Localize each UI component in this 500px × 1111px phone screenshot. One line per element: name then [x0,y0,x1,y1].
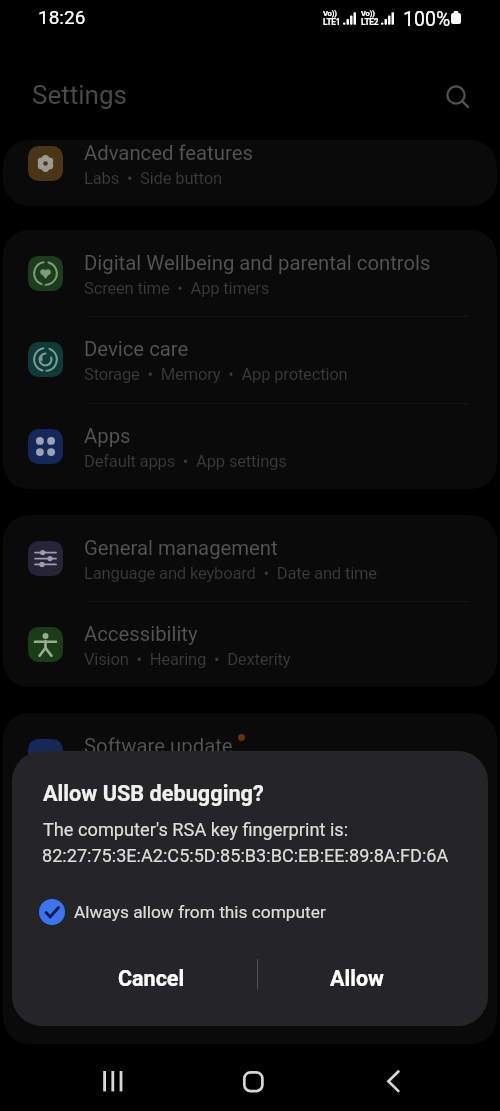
staticText: The computer's RSA key fingerprint is: [43,819,349,840]
staticText: Labs • Side button [84,169,222,188]
button[interactable]: Always allow from this computer [39,891,326,933]
staticText: Device care [84,337,189,361]
staticText: 82:27:75:3E:A2:C5:5D:85:B3:BC:EB:EE:89:8… [42,845,449,866]
staticText: Always allow from this computer [74,902,326,922]
button[interactable]: Recent apps [68,1063,158,1099]
staticText: General management [84,536,278,560]
staticText: Settings [32,80,127,110]
staticText: Screen time • App timers [84,279,270,298]
button[interactable]: Tips and user manual [3,799,497,885]
staticText: Advanced features [84,141,253,165]
staticText: Storage • Memory • App protection [84,365,348,384]
button[interactable]: Digital Wellbeing and parental controls [3,230,497,316]
staticText: 100% [403,8,451,31]
staticText: Accounts and backup [84,906,280,930]
staticText: Digital Wellbeing and parental controls [84,251,431,275]
button[interactable]: Search [437,76,475,114]
button[interactable]: Advanced features [3,140,497,186]
button[interactable]: Device care [3,316,497,402]
staticText: Vo)) [361,9,375,18]
staticText: Allow [330,966,384,991]
button[interactable]: Home [208,1063,298,1099]
staticText: Default apps • App settings [84,452,287,471]
staticText: Software update [84,734,233,758]
staticText: LTE1 [323,17,341,27]
staticText: Language and keyboard • Date and time [84,564,377,583]
staticText: Apps [84,424,131,448]
button[interactable]: Cancel [37,948,266,1008]
button[interactable]: Allow [257,948,456,1008]
button[interactable]: About phone [3,958,497,1044]
button[interactable]: Software update [3,713,497,799]
staticText: Vision • Hearing • Dexterity [84,650,291,669]
staticText: Vo)) [323,9,337,18]
staticText: Tips and user manual [84,820,279,844]
staticText: Allow USB debugging? [43,781,264,806]
staticText: Cancel [118,966,185,991]
staticText: Accessibility [84,622,198,646]
button[interactable]: Back [348,1063,438,1099]
staticText: Useful tips • Contact us [84,848,260,867]
button[interactable]: Accessibility [3,601,497,687]
button[interactable]: General management [3,515,497,601]
staticText: 18:26 [38,6,86,28]
staticText: LTE2 [361,17,379,27]
button[interactable]: Accounts and backup [3,885,497,971]
staticText: About phone [84,979,200,1003]
button[interactable]: Apps [3,403,497,489]
